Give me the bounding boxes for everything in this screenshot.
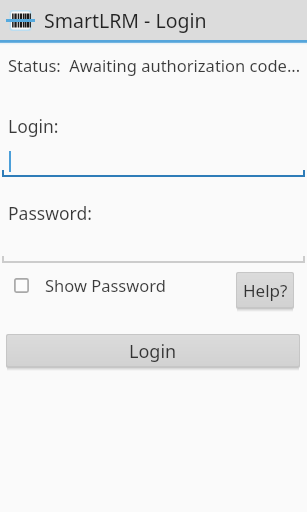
staticText: Status: Awaiting authorization code... <box>8 54 307 76</box>
button[interactable]: Login <box>6 334 300 368</box>
button[interactable]: Help? <box>236 272 294 309</box>
button[interactable] <box>8 271 163 299</box>
button[interactable]: SmartLRM - Login <box>6 0 207 40</box>
staticText: Help? <box>243 279 288 302</box>
button[interactable] <box>2 226 305 263</box>
staticText: Login: <box>8 114 59 138</box>
staticText: Password: <box>8 201 92 225</box>
staticText: SmartLRM - Login <box>44 7 207 34</box>
staticText: Show Password <box>45 274 166 296</box>
button[interactable] <box>2 140 305 177</box>
staticText: Login <box>129 339 177 364</box>
